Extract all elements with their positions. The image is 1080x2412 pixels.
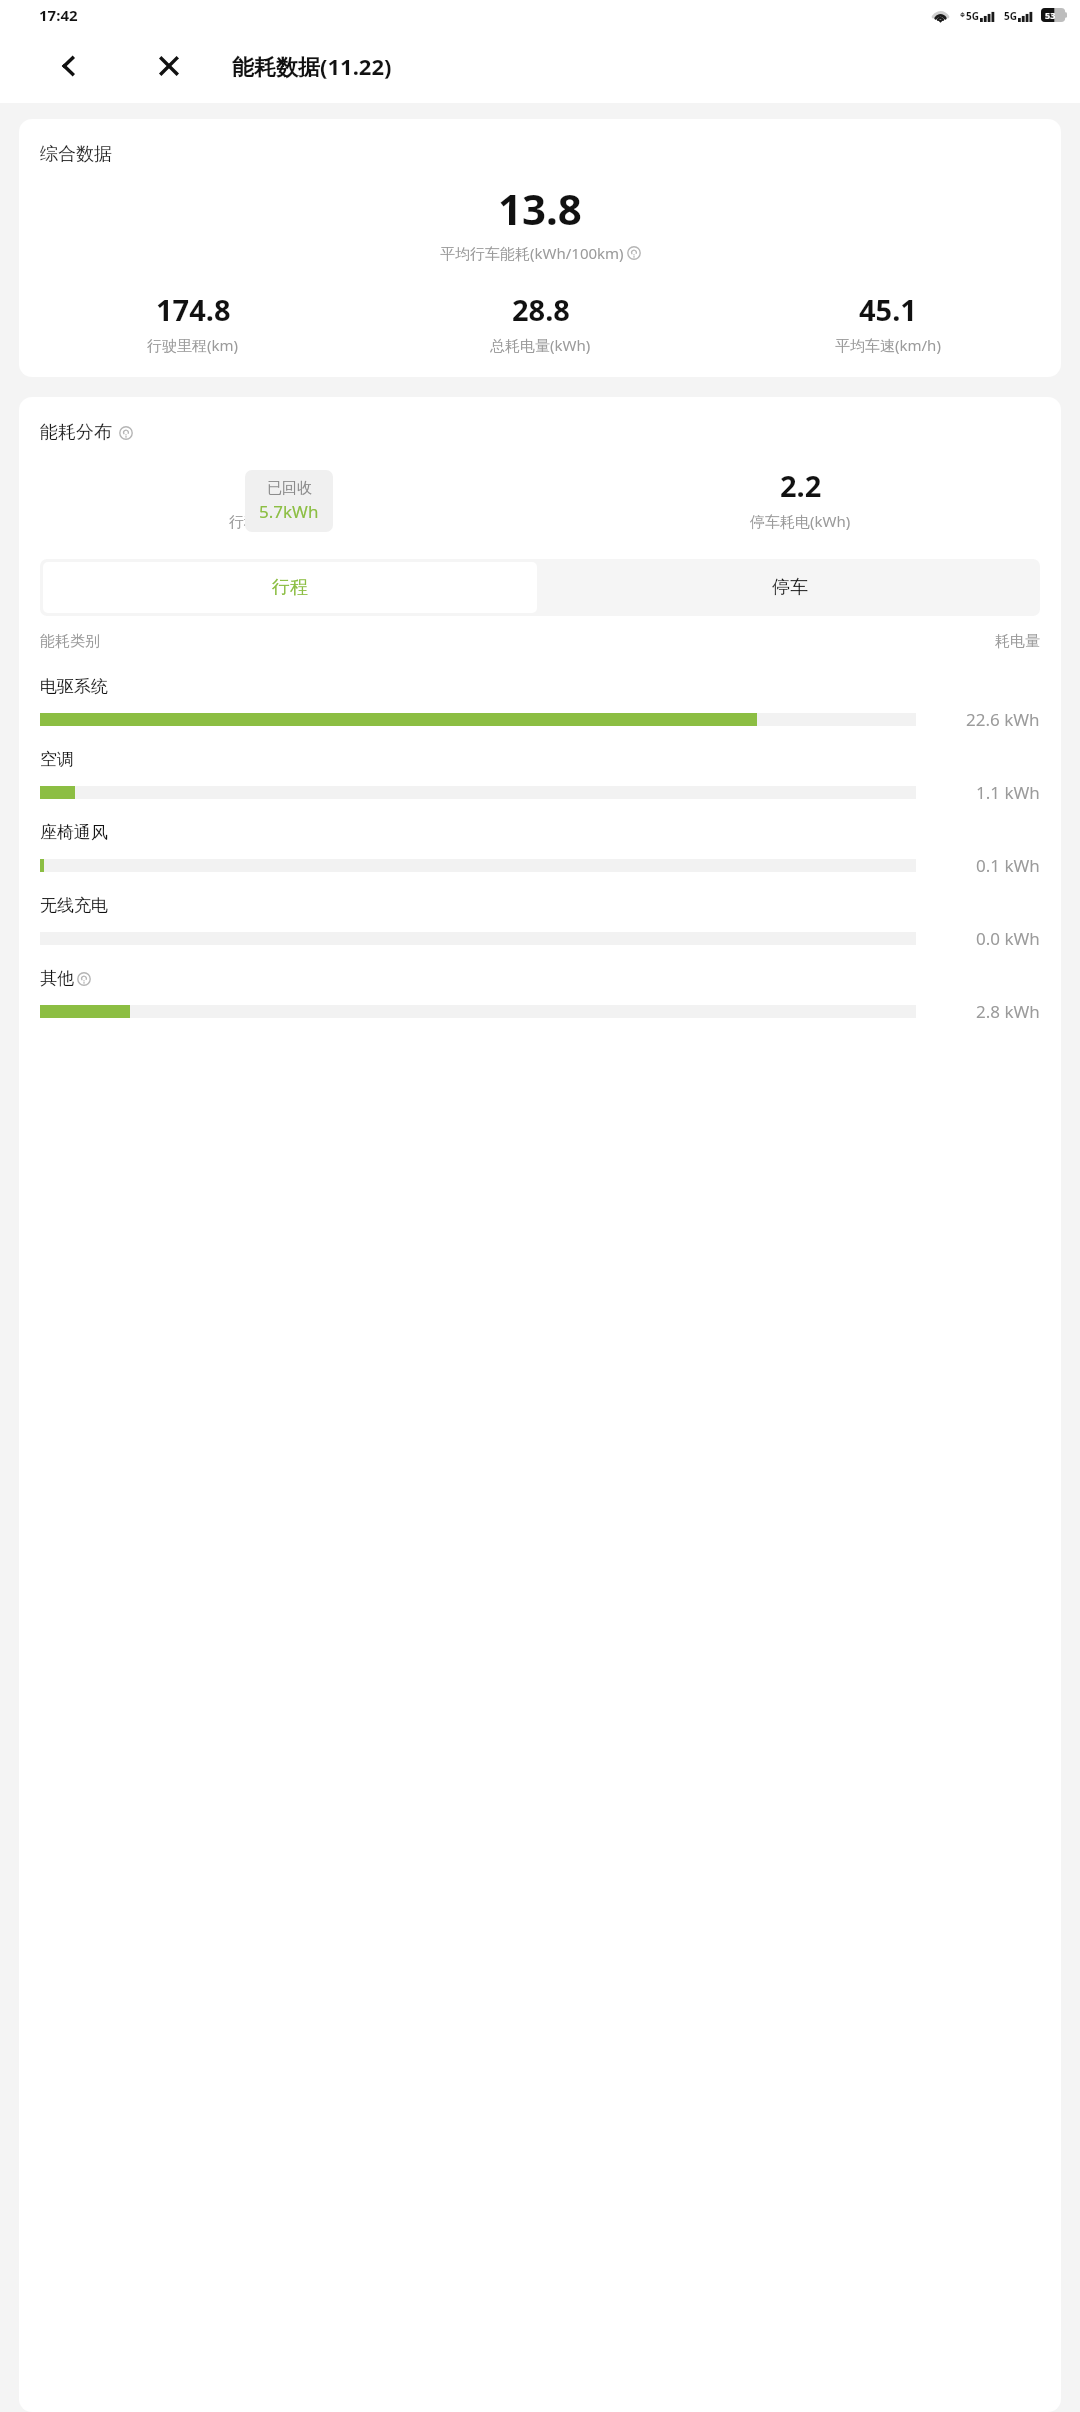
staticText: 能耗数据(11.22) [232,51,392,81]
button[interactable]: Back [48,45,90,87]
staticText: 行程 [272,576,308,599]
staticText: 耗电量 [995,632,1040,651]
button[interactable]: 行程 [43,562,537,613]
button[interactable]: 其他 [19,959,1061,1032]
staticText: 5G [966,9,979,23]
staticText: 能耗分布 [40,421,112,444]
staticText: 能耗类别 [40,632,100,651]
staticText: 无线充电 [40,895,108,916]
staticText: 174.8 [156,290,231,329]
staticText: 0.0 kWh [976,927,1040,950]
staticText: 2.8 kWh [976,1000,1040,1023]
staticText: 座椅通风 [40,822,108,843]
staticText: 53 [1045,9,1056,21]
staticText: 45.1 [859,290,917,329]
staticText: 26.6 [251,466,309,505]
staticText: 28.8 [512,290,570,329]
staticText: 平均车速(km/h) [835,335,941,355]
staticText: 1.1 kWh [976,781,1040,804]
staticText: 停车 [772,576,808,599]
staticText: 5G [1004,9,1017,23]
staticText: 其他 [40,968,74,989]
staticText: 22.6 kWh [966,708,1040,731]
button[interactable]: 已回收 [245,470,333,532]
staticText: 0.1 kWh [976,854,1040,877]
staticText: 综合数据 [40,143,112,166]
button[interactable]: 电驱系统 [19,667,1061,740]
staticText: 空调 [40,749,74,770]
staticText: 停车耗电(kWh) [750,511,851,531]
staticText: 平均行车能耗(kWh/100km) [440,243,624,263]
staticText: 2.2 [780,466,822,505]
staticText: 13.8 [498,180,582,237]
button[interactable]: 无线充电 [19,886,1061,959]
staticText: 17:42 [39,5,78,25]
staticText: 已回收 [267,479,312,498]
staticText: 总耗电量(kWh) [490,335,591,355]
button[interactable]: 座椅通风 [19,813,1061,886]
button[interactable]: Close [148,45,190,87]
button[interactable]: 综合数据 [19,119,1061,377]
button[interactable]: 停车 [540,559,1040,616]
staticText: 电驱系统 [40,676,108,697]
staticText: 行程耗电(kWh) [229,511,330,531]
button[interactable]: 空调 [19,740,1061,813]
staticText: 行驶里程(km) [147,335,239,355]
staticText: 5.7kWh [259,500,319,523]
